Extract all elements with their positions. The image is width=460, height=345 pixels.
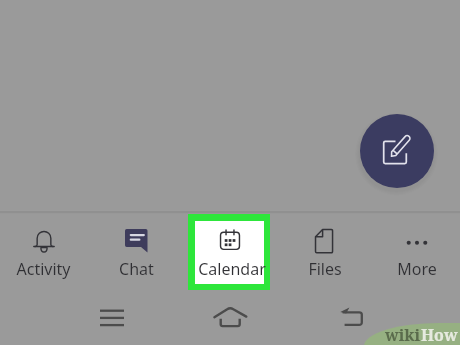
button[interactable]: Back	[335, 302, 371, 338]
staticText: Chat	[119, 258, 154, 280]
button[interactable]: Recent apps	[94, 302, 130, 338]
button[interactable]: Activity	[0, 213, 90, 291]
staticText: Files	[308, 258, 342, 280]
staticText: How	[421, 324, 458, 345]
button[interactable]: More	[370, 213, 460, 291]
staticText: More	[397, 258, 437, 280]
staticText: Activity	[16, 258, 71, 280]
staticText: wiki	[385, 324, 421, 345]
button[interactable]: Files	[278, 213, 371, 291]
staticText: Calendar	[198, 258, 266, 280]
button[interactable]: New chat	[360, 114, 434, 188]
button[interactable]: Chat	[90, 213, 183, 291]
button[interactable]: Home	[212, 302, 248, 338]
button[interactable]	[184, 213, 276, 291]
